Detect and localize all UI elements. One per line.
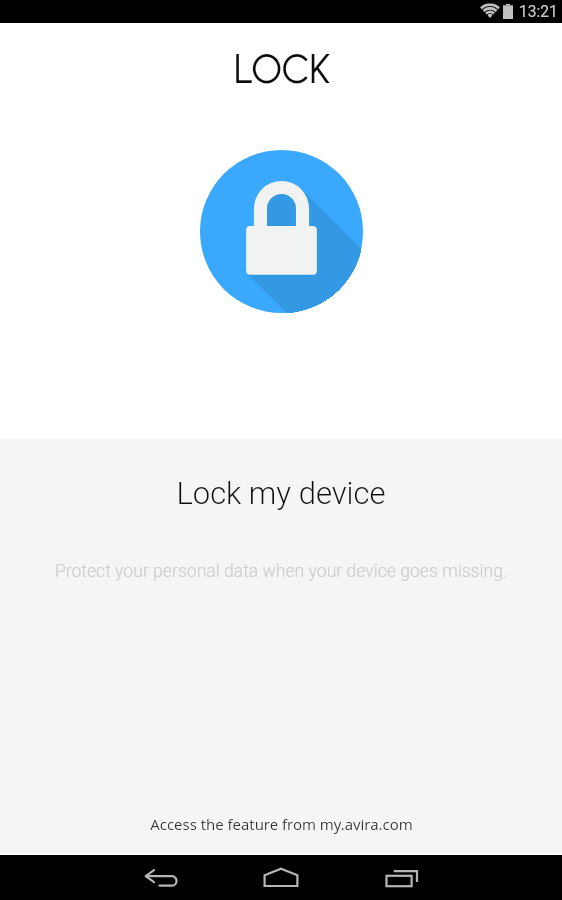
staticText: Lock my device: [0, 475, 562, 511]
staticText: Access the feature from my.avira.com: [150, 814, 413, 834]
staticText: LOCK: [1, 45, 562, 93]
button[interactable]: Back: [121, 854, 201, 899]
button[interactable]: Access the feature from my.avira.com: [142, 808, 421, 840]
button[interactable]: Recent apps: [361, 854, 441, 899]
staticText: 13:21: [519, 3, 558, 21]
staticText: Protect your personal data when your dev…: [0, 561, 562, 582]
button[interactable]: Home: [241, 854, 321, 899]
